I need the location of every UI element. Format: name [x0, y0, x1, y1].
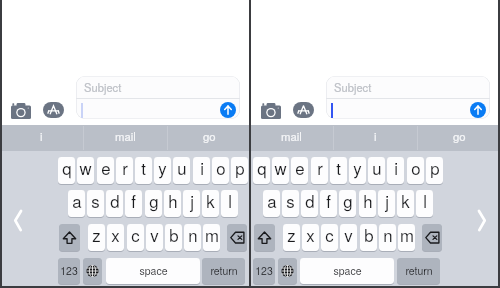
button[interactable]: Shift [254, 224, 275, 251]
button[interactable]: Next keyboard [478, 209, 486, 232]
button[interactable]: u [173, 157, 190, 184]
button[interactable]: f [320, 190, 337, 217]
staticText: h [363, 190, 373, 213]
button[interactable]: Delete [422, 224, 442, 251]
button[interactable]: b [360, 224, 377, 251]
button[interactable]: q [253, 157, 270, 184]
staticText: x [306, 224, 315, 247]
button[interactable]: y [154, 157, 171, 184]
button[interactable]: t [135, 157, 152, 184]
button[interactable]: o [212, 157, 229, 184]
button[interactable]: s [87, 190, 104, 217]
button[interactable]: c [321, 224, 338, 251]
staticText: return [210, 263, 238, 278]
button[interactable]: g [145, 190, 162, 217]
button[interactable]: m [203, 224, 220, 251]
button[interactable]: Subject [326, 76, 490, 119]
button[interactable]: d [106, 190, 123, 217]
staticText: a [267, 190, 277, 213]
button[interactable]: z [283, 224, 300, 251]
button[interactable]: r [116, 157, 133, 184]
button[interactable]: space [106, 258, 200, 284]
button[interactable]: Send [220, 102, 236, 118]
button[interactable]: i [0, 125, 83, 151]
staticText: z [92, 224, 101, 247]
staticText: u [372, 157, 382, 180]
button[interactable]: App Store [293, 102, 314, 118]
button[interactable]: a [68, 190, 85, 217]
button[interactable]: g [339, 190, 356, 217]
button[interactable]: x [107, 224, 124, 251]
button[interactable]: d [301, 190, 318, 217]
staticText: g [343, 190, 353, 213]
button[interactable]: Subject [76, 76, 240, 119]
button[interactable]: x [302, 224, 319, 251]
button[interactable]: w [272, 157, 289, 184]
staticText: k [206, 190, 215, 213]
staticText: y [353, 157, 362, 180]
button[interactable]: q [58, 157, 75, 184]
button[interactable]: z [88, 224, 105, 251]
staticText: t [336, 157, 341, 180]
button[interactable]: v [340, 224, 357, 251]
button[interactable]: Take photo [11, 103, 31, 119]
button[interactable]: w [77, 157, 94, 184]
button[interactable]: y [349, 157, 366, 184]
button[interactable]: Delete [227, 224, 247, 251]
button[interactable]: e [97, 157, 114, 184]
button[interactable]: mail [250, 125, 333, 151]
button[interactable]: t [330, 157, 347, 184]
button[interactable]: return [397, 258, 440, 284]
staticText: p [430, 157, 440, 180]
button[interactable]: Shift [59, 224, 80, 251]
staticText: c [325, 224, 334, 247]
button[interactable]: Previous keyboard [14, 209, 22, 232]
button[interactable]: Send [470, 102, 486, 118]
staticText: d [305, 190, 315, 213]
button[interactable]: l [416, 190, 433, 217]
button[interactable]: c [127, 224, 144, 251]
button[interactable]: mail [84, 125, 167, 151]
button[interactable]: 123 [253, 258, 275, 284]
staticText: 123 [255, 263, 273, 278]
button[interactable]: v [146, 224, 163, 251]
button[interactable]: return [202, 258, 245, 284]
button[interactable]: go [168, 125, 250, 151]
button[interactable]: Change keyboard [83, 258, 102, 284]
staticText: i [374, 128, 377, 144]
button[interactable]: o [407, 157, 424, 184]
button[interactable]: b [165, 224, 182, 251]
button[interactable]: go [418, 125, 500, 151]
button[interactable]: i [387, 157, 404, 184]
button[interactable]: k [202, 190, 219, 217]
button[interactable]: u [368, 157, 385, 184]
button[interactable]: i [193, 157, 210, 184]
button[interactable]: n [184, 224, 201, 251]
button[interactable]: r [311, 157, 328, 184]
button[interactable]: e [291, 157, 308, 184]
button[interactable]: space [300, 258, 394, 284]
button[interactable]: n [379, 224, 396, 251]
staticText: d [110, 190, 120, 213]
button[interactable]: f [125, 190, 142, 217]
button[interactable]: p [426, 157, 443, 184]
button[interactable]: Change keyboard [278, 258, 297, 284]
staticText: c [131, 224, 140, 247]
button[interactable]: j [183, 190, 200, 217]
button[interactable]: j [378, 190, 395, 217]
button[interactable]: m [398, 224, 415, 251]
staticText: h [168, 190, 178, 213]
button[interactable]: l [221, 190, 238, 217]
staticText: s [286, 190, 295, 213]
button[interactable]: h [359, 190, 376, 217]
button[interactable]: 123 [58, 258, 80, 284]
button[interactable]: App Store [43, 102, 64, 118]
staticText: i [200, 157, 204, 180]
button[interactable]: p [231, 157, 248, 184]
button[interactable]: a [263, 190, 280, 217]
button[interactable]: s [282, 190, 299, 217]
button[interactable]: h [164, 190, 181, 217]
button[interactable]: i [334, 125, 417, 151]
button[interactable]: k [397, 190, 414, 217]
button[interactable]: Take photo [261, 103, 281, 119]
